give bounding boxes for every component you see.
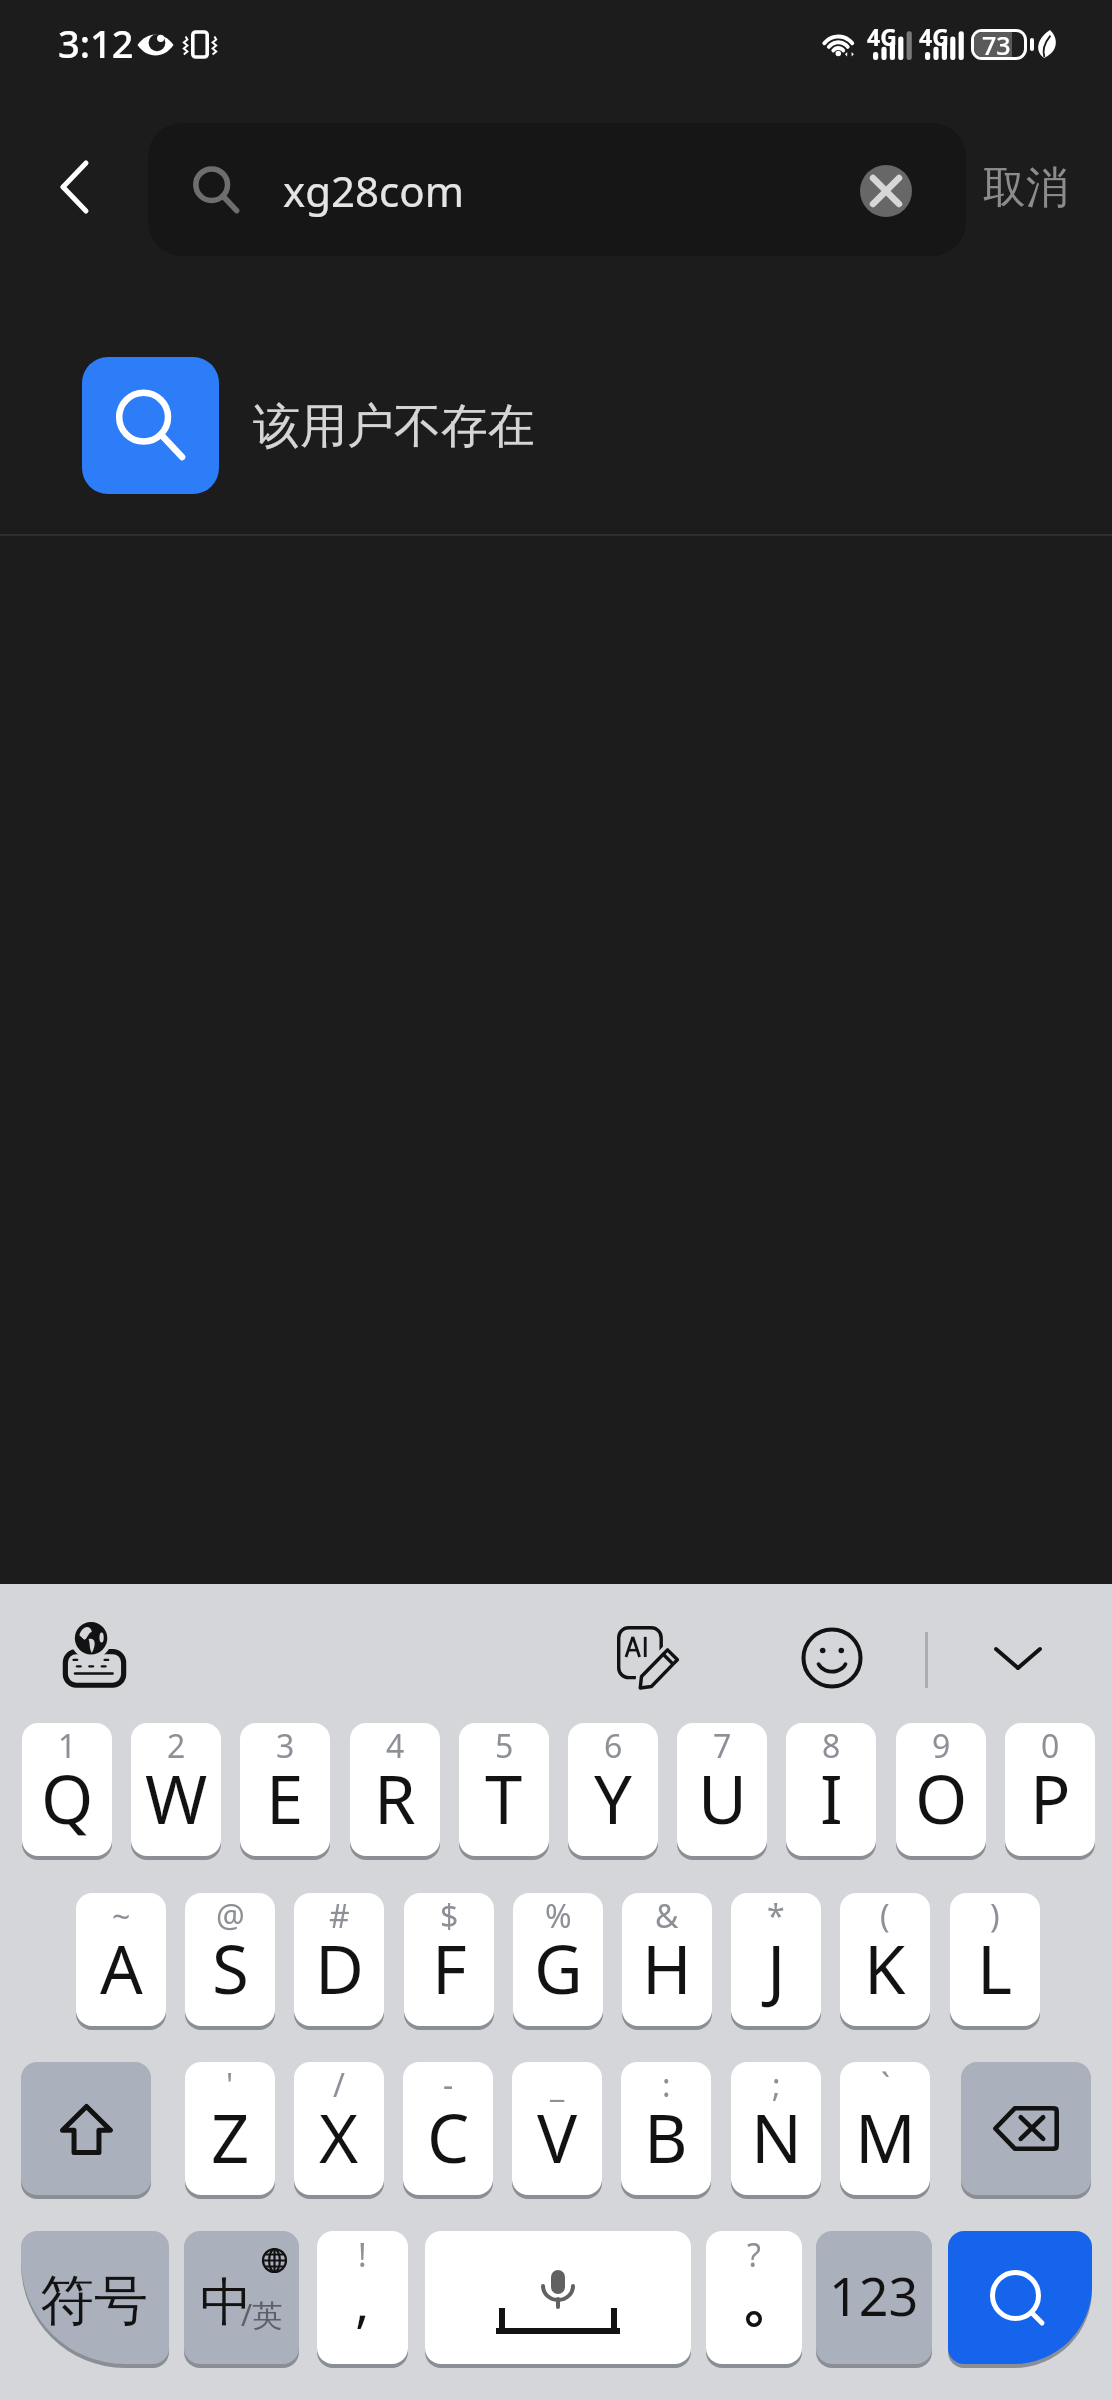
button[interactable]: - (403, 2062, 493, 2195)
button[interactable]: Clear text (860, 165, 912, 217)
button[interactable]: Emoji (796, 1622, 868, 1694)
staticText: / (333, 2063, 345, 2107)
staticText: G (534, 1922, 583, 2013)
staticText: K (864, 1922, 906, 2013)
staticText: J (767, 1922, 786, 2013)
staticText: E (266, 1752, 304, 1843)
staticText: 4G (867, 21, 897, 52)
button[interactable]: 2 (131, 1723, 221, 1856)
button[interactable]: xg28com (148, 123, 966, 256)
button[interactable]: 7 (677, 1723, 767, 1856)
button[interactable]: 3 (240, 1723, 330, 1856)
staticText: X (319, 2091, 359, 2182)
staticText: I (820, 1752, 843, 1843)
staticText: 4G (919, 21, 949, 52)
staticText: R (374, 1752, 416, 1843)
staticText: 1 (58, 1724, 77, 1768)
button[interactable]: * (731, 1893, 821, 2026)
button[interactable]: _ (512, 2062, 602, 2195)
staticText: ~ (112, 1894, 131, 1938)
button[interactable]: Shift (21, 2062, 151, 2195)
button[interactable]: Space (425, 2231, 691, 2364)
staticText: 8 (822, 1724, 841, 1768)
staticText: 取消 (983, 161, 1069, 215)
button[interactable]: $ (404, 1893, 494, 2026)
staticText: /英 (241, 2294, 283, 2335)
staticText: 符号 (40, 2267, 148, 2335)
staticText: 7 (713, 1724, 732, 1768)
staticText: _ (550, 2063, 565, 2107)
button[interactable]: ~ (76, 1893, 166, 2026)
staticText: C (427, 2091, 470, 2182)
staticText: D (315, 1922, 364, 2013)
button[interactable]: 8 (786, 1723, 876, 1856)
staticText: 4 (386, 1724, 405, 1768)
staticText: * (767, 1894, 785, 1938)
staticText: ! (358, 2233, 367, 2277)
staticText: 该用户不存在 (253, 397, 535, 456)
staticText: $ (440, 1894, 459, 1938)
staticText: N (751, 2091, 802, 2182)
staticText: 0 (1041, 1724, 1060, 1768)
staticText: , (355, 2264, 370, 2338)
staticText: 2 (167, 1724, 186, 1768)
staticText: xg28com (283, 162, 464, 219)
staticText: ` (881, 2063, 890, 2107)
button[interactable]: ! (317, 2231, 408, 2364)
staticText: M (855, 2091, 916, 2182)
staticText: ? (747, 2233, 761, 2277)
button[interactable]: ) (950, 1893, 1040, 2026)
staticText: O (915, 1752, 968, 1843)
button[interactable]: @ (185, 1893, 275, 2026)
button[interactable]: % (513, 1893, 603, 2026)
button[interactable]: : (621, 2062, 711, 2195)
staticText: L (977, 1922, 1013, 2013)
button[interactable]: 该用户不存在 (0, 290, 1112, 535)
button[interactable]: 中 (184, 2231, 299, 2364)
staticText: ; (772, 2063, 781, 2107)
button[interactable]: 1 (22, 1723, 112, 1856)
staticText: A (100, 1922, 143, 2013)
button[interactable]: ( (840, 1893, 930, 2026)
staticText: 中 (200, 2270, 252, 2336)
button[interactable]: # (294, 1893, 384, 2026)
button[interactable]: 4 (350, 1723, 440, 1856)
button[interactable]: & (622, 1893, 712, 2026)
button[interactable]: / (294, 2062, 384, 2195)
button[interactable]: 5 (459, 1723, 549, 1856)
button[interactable]: 6 (568, 1723, 658, 1856)
staticText: ' (226, 2063, 234, 2107)
button[interactable]: 符号 (21, 2231, 169, 2364)
button[interactable]: ` (840, 2062, 930, 2195)
staticText: T (485, 1752, 523, 1843)
button[interactable]: Hide keyboard (982, 1622, 1054, 1694)
staticText: 6 (604, 1724, 623, 1768)
button[interactable]: 123 (816, 2231, 932, 2364)
button[interactable]: ? (706, 2231, 802, 2364)
staticText: U (698, 1752, 747, 1843)
staticText: 3:12 (58, 17, 134, 69)
button[interactable]: ; (731, 2062, 821, 2195)
button[interactable]: Switch language (57, 1616, 129, 1688)
button[interactable]: ' (185, 2062, 275, 2195)
button[interactable]: 0 (1005, 1723, 1095, 1856)
button[interactable]: Search (948, 2231, 1092, 2364)
staticText: P (1030, 1752, 1071, 1843)
staticText: 9 (932, 1724, 951, 1768)
button[interactable]: AI writing (612, 1621, 684, 1693)
staticText: H (642, 1922, 692, 2013)
staticText: S (212, 1922, 249, 2013)
button[interactable]: Back (40, 148, 120, 228)
staticText: @ (216, 1894, 245, 1938)
staticText: 3 (276, 1724, 295, 1768)
staticText: Z (211, 2091, 250, 2182)
button[interactable]: Backspace (961, 2062, 1091, 2195)
button[interactable]: 取消 (966, 143, 1092, 235)
staticText: Q (41, 1752, 94, 1843)
staticText: W (145, 1752, 208, 1843)
staticText: 123 (829, 2260, 919, 2331)
staticText: 5 (495, 1724, 514, 1768)
staticText: V (537, 2091, 578, 2182)
staticText: ) (990, 1894, 1000, 1938)
button[interactable]: 9 (896, 1723, 986, 1856)
